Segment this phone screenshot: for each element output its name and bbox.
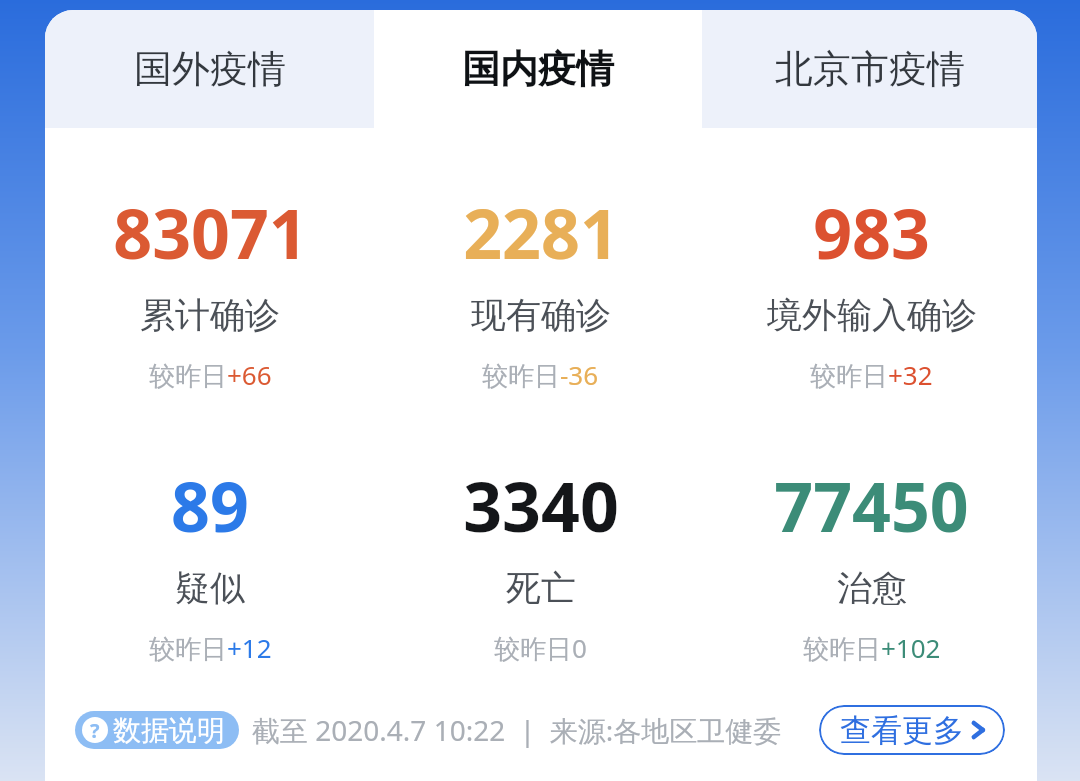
staticText: 查看更多 (840, 711, 964, 750)
staticText: 截至 2020.4.7 10:22 | 来源:各地区卫健委 (252, 711, 782, 749)
staticText: 较昨日+12 (149, 630, 272, 666)
staticText: 较昨日+32 (810, 357, 933, 393)
staticText: 较昨日+102 (803, 630, 941, 666)
staticText: 现有确诊 (471, 293, 611, 337)
staticText: 77450 (774, 459, 969, 552)
staticText: 境外输入确诊 (767, 293, 977, 337)
staticText: 疑似 (175, 566, 245, 610)
button[interactable]: 北京市疫情 (702, 10, 1037, 128)
button[interactable]: 国外疫情 (45, 10, 374, 128)
staticText: 数据说明 (113, 713, 225, 748)
staticText: 国外疫情 (134, 45, 286, 93)
staticText: 死亡 (506, 566, 576, 610)
button[interactable]: 查看更多 (819, 705, 1005, 755)
staticText: 较昨日0 (494, 630, 587, 666)
staticText: 3340 (463, 459, 619, 552)
staticText: 治愈 (837, 566, 907, 610)
staticText: 国内疫情 (462, 45, 614, 93)
staticText: 北京市疫情 (775, 45, 965, 93)
staticText: 累计确诊 (140, 293, 280, 337)
staticText: 较昨日+66 (149, 357, 272, 393)
staticText: 2281 (463, 186, 619, 279)
button[interactable]: 国内疫情 (374, 10, 702, 128)
button[interactable]: ? (75, 711, 239, 749)
other: View more (971, 719, 985, 741)
staticText: 89 (171, 459, 249, 552)
staticText: 983 (813, 186, 930, 279)
staticText: 较昨日-36 (482, 357, 599, 393)
staticText: 83071 (113, 186, 308, 279)
staticText: ? (90, 717, 100, 743)
